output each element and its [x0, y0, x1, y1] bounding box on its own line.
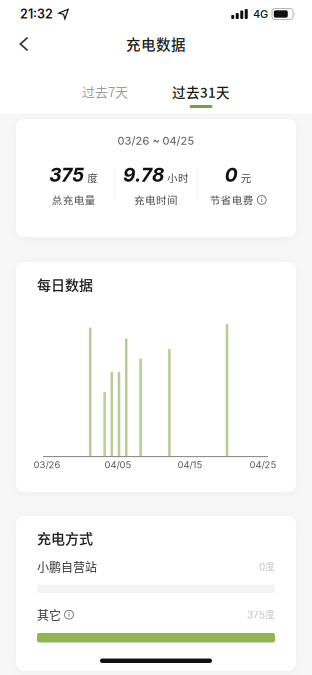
- staticText: 9.78: [123, 163, 164, 186]
- staticText: 小时: [167, 170, 189, 185]
- staticText: 03/26: [33, 459, 60, 470]
- button[interactable]: 过去7天: [82, 71, 128, 101]
- staticText: 21:32: [20, 6, 53, 21]
- staticText: 04/15: [177, 459, 202, 470]
- staticText: 过去7天: [82, 82, 128, 101]
- staticText: 充电方式: [37, 527, 93, 548]
- staticText: 4G: [253, 7, 268, 21]
- staticText: 04/05: [104, 459, 131, 470]
- staticText: 375度: [247, 608, 275, 621]
- button[interactable]: 过去31天: [172, 71, 230, 108]
- staticText: 总充电量: [52, 192, 96, 207]
- staticText: 充电数据: [126, 33, 186, 54]
- staticText: 充电时间: [134, 192, 178, 207]
- staticText: 度: [87, 170, 98, 185]
- staticText: 0度: [259, 560, 275, 573]
- staticText: 0: [225, 163, 238, 186]
- button[interactable]: [64, 610, 74, 620]
- staticText: 375: [49, 163, 84, 186]
- button[interactable]: [257, 195, 267, 205]
- staticText: 小鹏自营站: [37, 558, 97, 575]
- staticText: 04/25: [249, 459, 276, 470]
- staticText: 其它: [37, 606, 61, 623]
- staticText: 节省电费: [210, 192, 254, 207]
- staticText: 03/26 ~ 04/25: [117, 134, 194, 147]
- button[interactable]: [0, 28, 29, 59]
- staticText: 每日数据: [37, 274, 93, 294]
- staticText: 过去31天: [172, 82, 230, 101]
- staticText: 元: [241, 170, 252, 185]
